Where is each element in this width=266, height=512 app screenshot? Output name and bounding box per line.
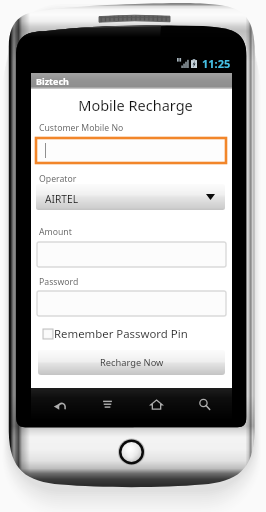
- button[interactable]: [37, 242, 226, 267]
- staticText: Password: [39, 276, 79, 288]
- staticText: AIRTEL: [45, 192, 78, 206]
- staticText: Recharge Now: [100, 356, 164, 369]
- button[interactable]: Home: [136, 389, 176, 419]
- staticText: Operator: [39, 173, 77, 185]
- button[interactable]: [36, 138, 226, 163]
- staticText: Mobile Recharge: [35, 95, 236, 115]
- button[interactable]: Search: [184, 389, 224, 419]
- staticText: Customer Mobile No: [39, 122, 124, 134]
- staticText: Amount: [39, 226, 72, 238]
- staticText: Biztech: [36, 75, 69, 87]
- button[interactable]: Menu: [87, 389, 127, 419]
- button[interactable]: Recharge Now: [38, 350, 225, 375]
- button[interactable]: [37, 291, 226, 316]
- button[interactable]: Back: [39, 389, 79, 419]
- button[interactable]: Remember Password Pin: [43, 325, 188, 343]
- staticText: Remember Password Pin: [54, 326, 188, 342]
- button[interactable]: AIRTEL: [36, 184, 225, 210]
- staticText: 11:25: [202, 56, 231, 71]
